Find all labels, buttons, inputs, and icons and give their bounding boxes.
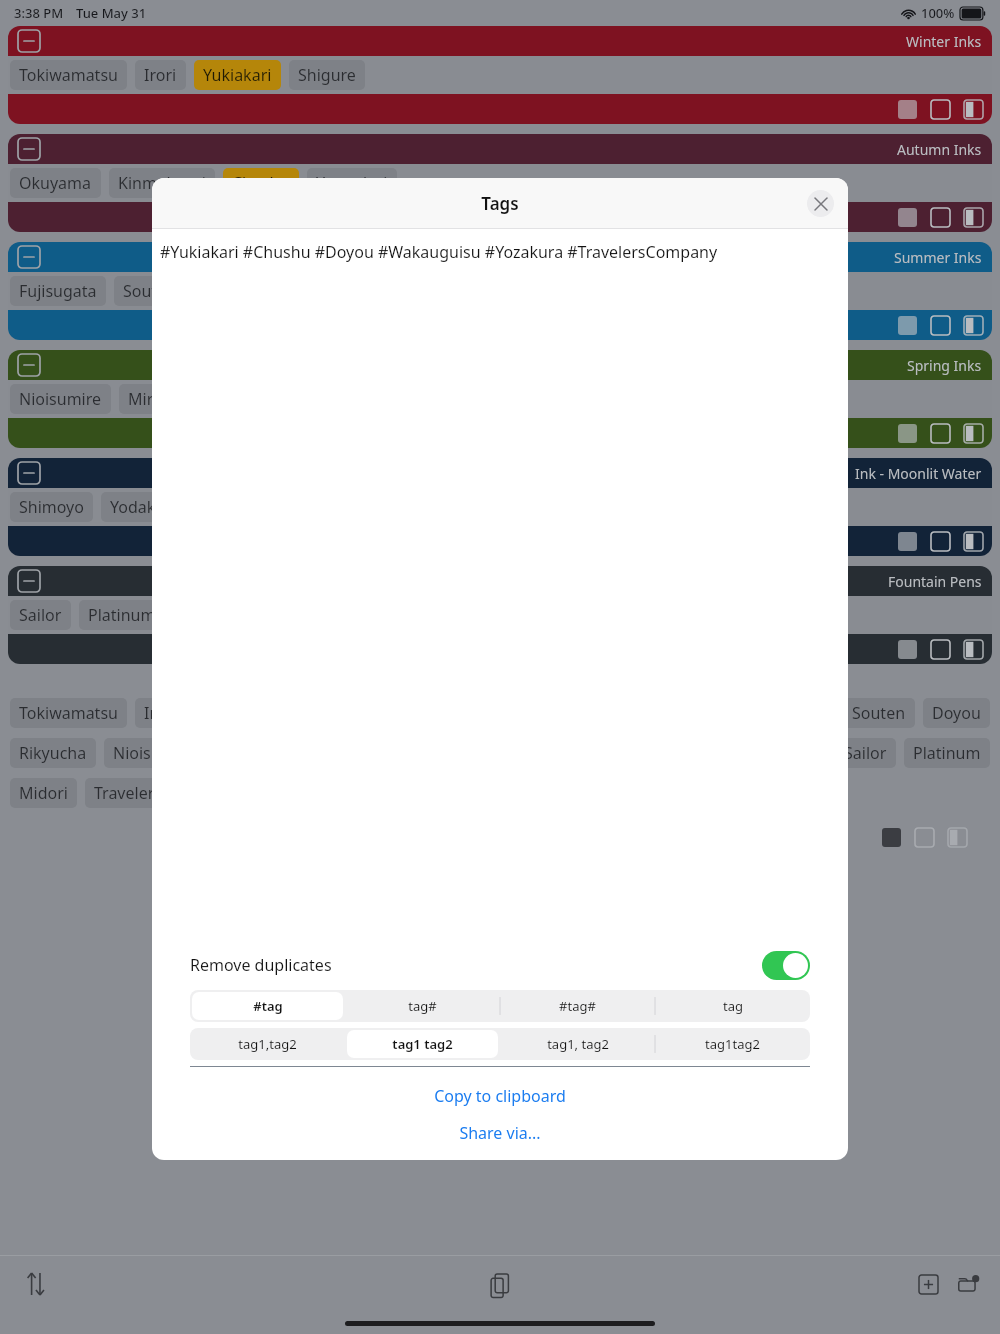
button[interactable]: New folder — [950, 1266, 986, 1302]
button[interactable]: Collapse section — [8, 350, 992, 448]
button[interactable]: tag — [657, 992, 808, 1020]
staticText: Yodaki — [110, 496, 160, 518]
button[interactable]: Rikyucha — [10, 738, 96, 768]
button[interactable]: Doyou — [923, 698, 990, 728]
button[interactable]: Grid view — [894, 96, 920, 122]
button[interactable]: Collapse section — [14, 458, 44, 488]
button[interactable]: Souten — [114, 276, 186, 306]
staticText: Copy to clipboard — [434, 1085, 566, 1107]
button[interactable]: Irori — [135, 60, 186, 90]
button[interactable]: Platinum — [904, 738, 990, 768]
button[interactable]: Grid view — [894, 312, 920, 338]
button[interactable]: tag1 tag2 — [347, 1030, 498, 1058]
button[interactable]: Tokiwamatsu — [10, 60, 127, 90]
button[interactable]: Yukiakari — [194, 60, 281, 90]
button[interactable]: tag1tag2 — [657, 1030, 808, 1058]
button[interactable]: Copy to clipboard — [152, 1081, 848, 1111]
button[interactable]: Fujisugata — [10, 276, 106, 306]
button[interactable]: Split view — [960, 96, 986, 122]
staticText: Doyou — [932, 702, 981, 724]
button[interactable]: Add — [910, 1266, 946, 1302]
button[interactable]: Split view — [960, 636, 986, 662]
button[interactable]: Duplicate — [480, 1266, 520, 1306]
staticText: tag1 tag2 — [392, 1035, 453, 1053]
button[interactable]: #tag — [192, 992, 343, 1020]
button[interactable]: Collapse section — [14, 134, 44, 164]
button[interactable]: tag1, tag2 — [502, 1030, 653, 1058]
button[interactable]: List view — [911, 824, 937, 850]
button[interactable]: Close — [807, 190, 834, 217]
button[interactable]: Collapse section — [8, 566, 992, 664]
button[interactable]: Kinmokusei — [109, 168, 215, 198]
button[interactable]: Collapse section — [14, 566, 44, 596]
button[interactable]: Yamadori — [307, 168, 397, 198]
button[interactable]: Split view — [960, 204, 986, 230]
staticText: Souten — [123, 280, 177, 302]
button[interactable]: Split view — [944, 824, 970, 850]
button[interactable]: List view — [927, 528, 953, 554]
button[interactable]: Shigure — [289, 60, 365, 90]
button[interactable]: Shimoyo — [10, 492, 93, 522]
button[interactable]: Irori — [135, 698, 186, 728]
button[interactable]: Yodaki — [101, 492, 169, 522]
button[interactable]: List view — [927, 420, 953, 446]
button[interactable]: List view — [927, 204, 953, 230]
staticText: tag1tag2 — [705, 1035, 760, 1053]
button[interactable]: tag# — [347, 992, 498, 1020]
button[interactable]: Collapse section — [14, 350, 44, 380]
staticText: Tue May 31 — [76, 4, 147, 22]
button[interactable]: Split view — [960, 312, 986, 338]
button[interactable]: Sailor — [10, 600, 71, 630]
staticText: #tag# — [559, 997, 596, 1015]
button[interactable]: Split view — [960, 420, 986, 446]
button[interactable]: Collapse section — [8, 242, 992, 340]
button[interactable]: Platinum — [79, 600, 165, 630]
button[interactable]: Grid view — [894, 420, 920, 446]
button[interactable]: Grid view — [894, 636, 920, 662]
button[interactable]: Sailor — [835, 738, 896, 768]
button[interactable]: Souten — [843, 698, 915, 728]
button[interactable]: List view — [927, 96, 953, 122]
button[interactable]: Tokiwamatsu — [10, 698, 127, 728]
staticText: Winter Inks — [906, 32, 982, 51]
button[interactable]: List view — [927, 312, 953, 338]
button[interactable]: Split view — [960, 528, 986, 554]
button[interactable]: Nioisumire — [10, 384, 111, 414]
button[interactable]: Mirumizu — [119, 384, 209, 414]
staticText: 100% — [921, 4, 955, 22]
button[interactable]: Grid view — [894, 528, 920, 554]
button[interactable]: Nioisumire — [104, 738, 205, 768]
button[interactable]: tag1,tag2 — [192, 1030, 343, 1058]
button[interactable]: Sort — [18, 1266, 54, 1302]
staticText: Share via... — [459, 1122, 541, 1144]
button[interactable]: Collapse section — [8, 134, 992, 232]
button[interactable]: Collapse section — [8, 26, 992, 124]
button[interactable]: Okuyama — [10, 168, 101, 198]
button[interactable]: Grid view — [878, 824, 904, 850]
button[interactable]: Collapse section — [8, 458, 992, 556]
button[interactable]: #tag# — [502, 992, 653, 1020]
button[interactable]: Grid view — [894, 204, 920, 230]
button[interactable]: Remove duplicates — [190, 944, 810, 986]
button[interactable]: Collapse section — [14, 26, 44, 56]
button[interactable]: TravelersCompany — [85, 778, 243, 808]
button[interactable]: Chushu — [223, 168, 299, 198]
staticText: Remove duplicates — [190, 954, 332, 976]
button[interactable]: Share via... — [152, 1118, 848, 1148]
staticText: tag# — [408, 997, 437, 1015]
button[interactable]: Midori — [10, 778, 77, 808]
staticText: tag1,tag2 — [238, 1035, 297, 1053]
button[interactable]: Collapse section — [14, 242, 44, 272]
button[interactable]: List view — [927, 636, 953, 662]
